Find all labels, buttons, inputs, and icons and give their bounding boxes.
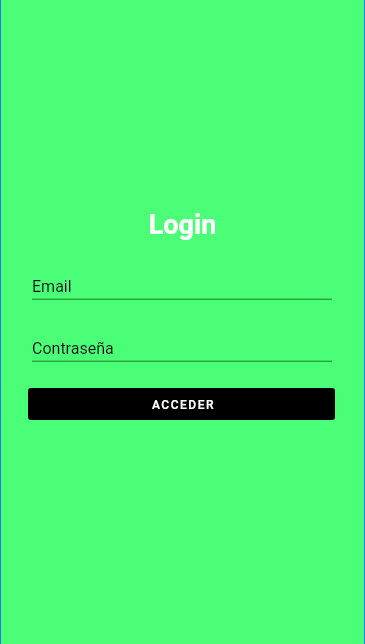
staticText: Login bbox=[0, 209, 365, 241]
staticText: ACCEDER bbox=[152, 398, 215, 412]
button[interactable]: ACCEDER bbox=[28, 388, 335, 420]
button[interactable]: Email bbox=[32, 274, 332, 300]
button[interactable]: Contraseña bbox=[32, 336, 332, 362]
staticText: Contraseña bbox=[32, 339, 114, 358]
staticText: Email bbox=[32, 277, 72, 296]
